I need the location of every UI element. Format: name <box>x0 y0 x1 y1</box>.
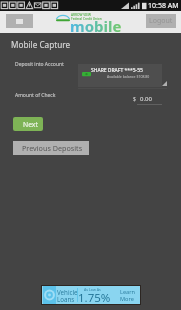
staticText: $ <box>133 96 136 103</box>
button[interactable]: Logout <box>146 14 176 28</box>
staticText: More <box>120 295 134 303</box>
button[interactable]: Next <box>13 117 43 131</box>
staticText: Loans <box>57 295 75 303</box>
staticText: 10:58 AM <box>148 1 179 11</box>
staticText: Previous Deposits <box>22 143 83 153</box>
button[interactable]: Vehicle <box>41 285 141 305</box>
staticText: Mobile Capture <box>11 39 71 50</box>
staticText: 0.00 <box>140 95 152 103</box>
staticText: Learn <box>120 288 135 296</box>
staticText: mobile <box>70 16 122 36</box>
button[interactable]: Previous Deposits <box>13 141 89 155</box>
button[interactable]: Menu <box>6 14 33 28</box>
button[interactable]: SHARE DRAFT ***5-55 <box>78 64 162 87</box>
staticText: 1.75% <box>78 290 111 306</box>
staticText: ARROW VIEW <box>71 13 91 17</box>
staticText: Logout <box>149 16 173 26</box>
staticText: As Low As <box>84 287 101 292</box>
staticText: Next <box>23 120 38 129</box>
staticText: Available balance $108.80 <box>107 74 150 79</box>
staticText: Federal Credit Union <box>71 17 102 21</box>
staticText: Vehicle <box>57 288 78 296</box>
staticText: Deposit into Account <box>15 61 64 68</box>
staticText: SHARE DRAFT ***5-55 <box>91 67 143 74</box>
staticText: Amount of Check <box>15 92 56 99</box>
